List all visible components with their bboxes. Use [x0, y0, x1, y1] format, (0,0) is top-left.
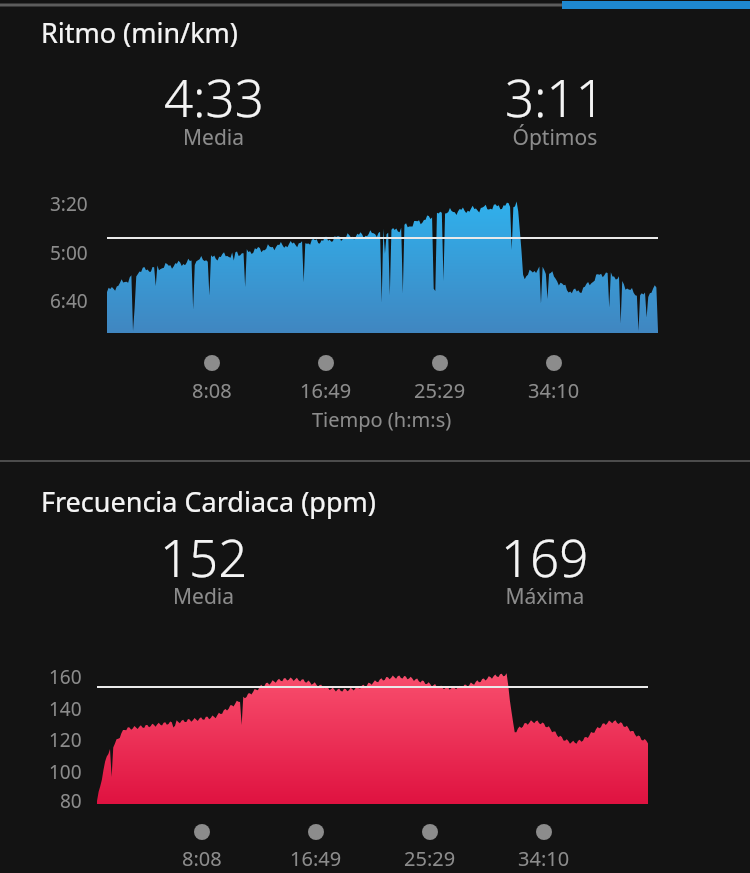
button[interactable]	[0, 0, 750, 873]
